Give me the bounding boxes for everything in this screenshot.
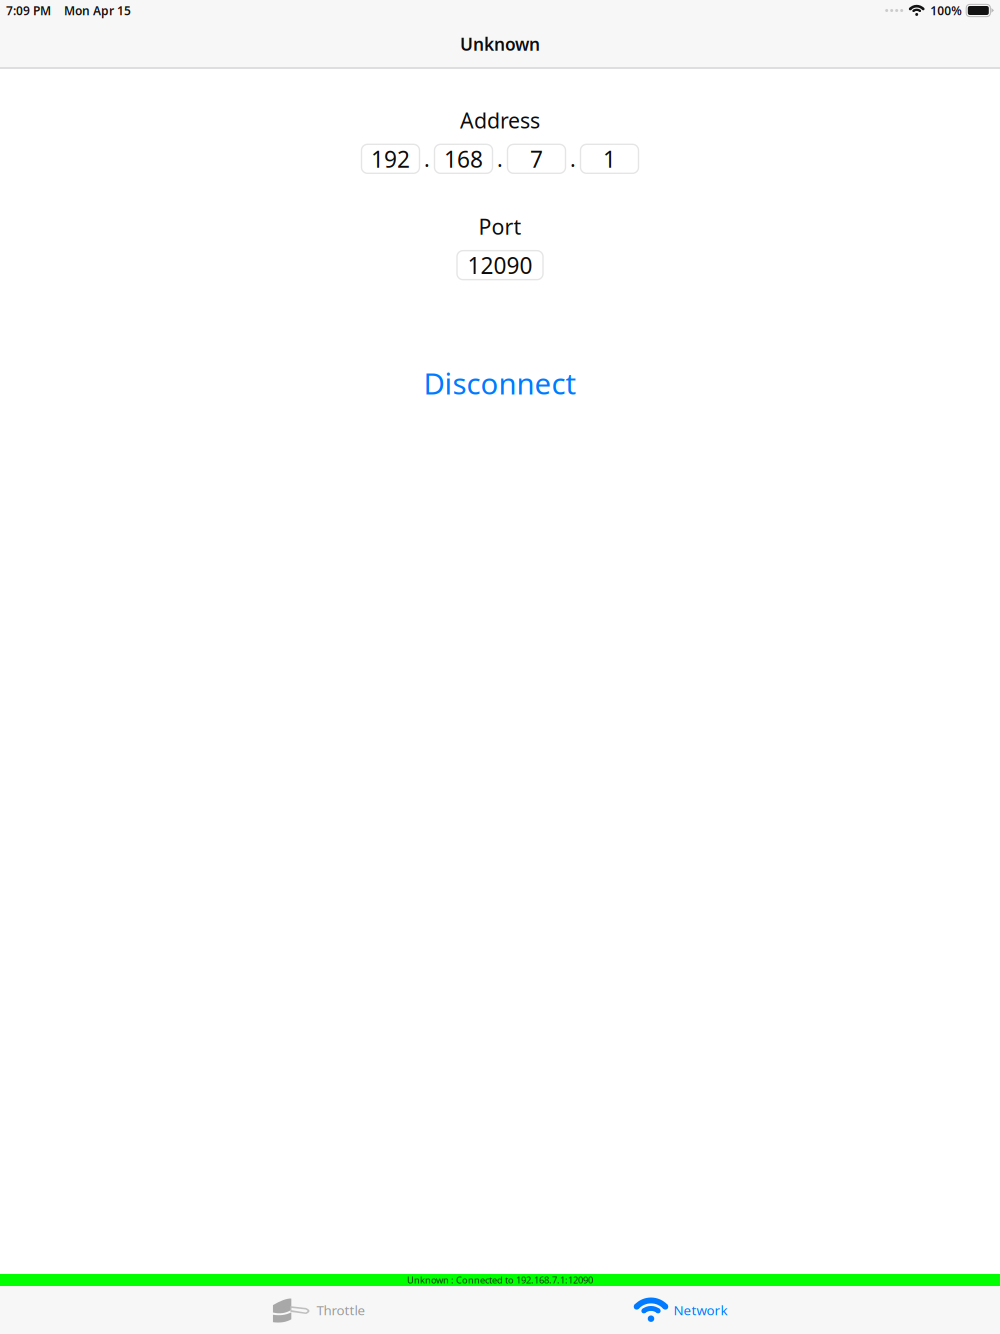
staticText: 7:09 PM — [6, 2, 51, 18]
button[interactable]: 192 — [361, 144, 419, 173]
staticText: 168 — [444, 144, 483, 174]
staticText: . — [497, 145, 503, 173]
staticText: Unknown — [460, 32, 540, 55]
staticText: Throttle — [316, 1301, 365, 1319]
staticText: 192 — [371, 144, 410, 174]
staticText: Unknown : Connected to 192.168.7.1:12090 — [407, 1274, 593, 1286]
button[interactable]: Network — [500, 1286, 862, 1333]
staticText: . — [570, 145, 576, 173]
staticText: 100% — [930, 2, 962, 18]
staticText: . — [424, 145, 430, 173]
staticText: Network — [673, 1301, 727, 1319]
staticText: 1 — [603, 144, 616, 174]
button[interactable]: 1 — [580, 144, 638, 173]
staticText: Disconnect — [423, 364, 576, 403]
staticText: 12090 — [467, 250, 532, 280]
button[interactable]: Disconnect — [399, 356, 600, 411]
button[interactable]: 168 — [434, 144, 492, 173]
staticText: Address — [460, 106, 540, 134]
button[interactable]: 7 — [507, 144, 565, 173]
staticText: Mon Apr 15 — [64, 2, 131, 18]
button[interactable]: Throttle — [138, 1286, 500, 1333]
button[interactable]: 12090 — [457, 251, 543, 280]
staticText: Port — [478, 212, 521, 241]
staticText: 7 — [530, 144, 543, 174]
